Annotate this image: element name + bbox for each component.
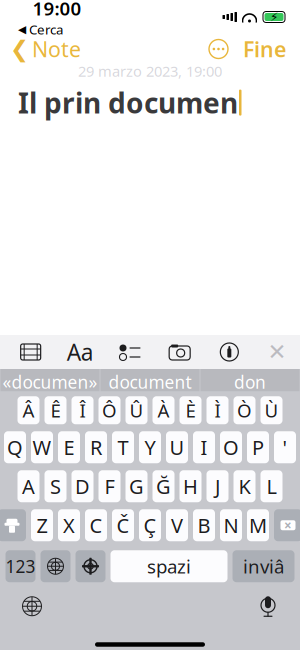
- staticText: B: [197, 512, 210, 539]
- button[interactable]: Ê: [44, 396, 66, 424]
- button[interactable]: X: [58, 509, 80, 541]
- button[interactable]: Ğ: [152, 470, 174, 502]
- button[interactable]: W: [31, 431, 53, 463]
- button[interactable]: 123: [5, 550, 35, 582]
- staticText: ⚡︎: [270, 10, 278, 24]
- button[interactable]: E: [58, 431, 80, 463]
- staticText: È: [185, 398, 195, 423]
- button[interactable]: Maiuscole: [0, 509, 26, 541]
- staticText: Note: [32, 35, 81, 63]
- staticText: C: [89, 512, 102, 539]
- staticText: A: [22, 473, 35, 500]
- staticText: Aa: [67, 337, 94, 367]
- button[interactable]: Q: [4, 431, 26, 463]
- button[interactable]: A: [17, 470, 39, 502]
- staticText: 29 marzo 2023, 19:00: [78, 61, 222, 81]
- staticText: Ç: [143, 512, 156, 539]
- staticText: X: [63, 512, 75, 539]
- staticText: ❮: [10, 36, 29, 62]
- staticText: Č: [116, 512, 129, 539]
- button[interactable]: J: [206, 470, 228, 502]
- staticText: don: [234, 370, 266, 393]
- button[interactable]: Chiudi: [260, 337, 294, 367]
- staticText: L: [266, 473, 276, 500]
- staticText: ✕: [267, 339, 286, 365]
- staticText: J: [215, 473, 220, 500]
- button[interactable]: D: [71, 470, 93, 502]
- staticText: U: [169, 434, 184, 461]
- button[interactable]: V: [166, 509, 188, 541]
- button[interactable]: Û: [125, 396, 147, 424]
- button[interactable]: À: [152, 396, 174, 424]
- staticText: inviâ: [243, 554, 284, 579]
- button[interactable]: Ô: [98, 396, 120, 424]
- button[interactable]: Cambia tastiera: [40, 550, 70, 582]
- button[interactable]: R: [85, 431, 107, 463]
- staticText: Î: [79, 398, 85, 423]
- button[interactable]: Emoji e lingue: [14, 592, 50, 620]
- button[interactable]: Y: [139, 431, 161, 463]
- button[interactable]: P: [247, 431, 269, 463]
- button[interactable]: L: [260, 470, 282, 502]
- staticText: spazi: [147, 554, 191, 579]
- button[interactable]: spazi: [110, 550, 227, 582]
- button[interactable]: F: [98, 470, 120, 502]
- button[interactable]: ❮: [0, 29, 81, 69]
- staticText: M: [249, 512, 267, 539]
- button[interactable]: Ò: [233, 396, 255, 424]
- staticText: E: [63, 434, 74, 461]
- button[interactable]: M: [247, 509, 269, 541]
- button[interactable]: Tabella: [12, 337, 50, 367]
- button[interactable]: Impostazioni tastiera: [75, 550, 105, 582]
- button[interactable]: È: [179, 396, 201, 424]
- button[interactable]: T: [112, 431, 134, 463]
- staticText: W: [32, 434, 51, 461]
- staticText: R: [90, 434, 102, 461]
- button[interactable]: G: [125, 470, 147, 502]
- button[interactable]: Ç: [139, 509, 161, 541]
- staticText: Ì: [214, 398, 220, 423]
- button[interactable]: ': [274, 431, 296, 463]
- staticText: ': [282, 434, 287, 461]
- button[interactable]: Elenco di controllo: [111, 337, 149, 367]
- staticText: Ğ: [156, 473, 171, 500]
- button[interactable]: Altre opzioni: [204, 32, 233, 65]
- button[interactable]: B: [193, 509, 215, 541]
- staticText: ×: [284, 516, 292, 534]
- staticText: S: [50, 473, 61, 500]
- staticText: P: [252, 434, 264, 461]
- staticText: Ù: [264, 398, 278, 423]
- staticText: Il prin documen: [18, 84, 238, 121]
- button[interactable]: inviâ: [232, 550, 294, 582]
- button[interactable]: K: [233, 470, 255, 502]
- button[interactable]: Markup: [210, 337, 248, 367]
- button[interactable]: H: [179, 470, 201, 502]
- button[interactable]: N: [220, 509, 242, 541]
- button[interactable]: document: [100, 369, 199, 395]
- button[interactable]: C: [85, 509, 107, 541]
- staticText: ◀: [18, 23, 26, 35]
- button[interactable]: Ù: [260, 396, 282, 424]
- staticText: 123: [5, 555, 35, 578]
- staticText: H: [183, 473, 198, 500]
- staticText: Cerca: [29, 20, 63, 38]
- button[interactable]: Z: [31, 509, 53, 541]
- button[interactable]: Fotocamera: [161, 337, 199, 367]
- button[interactable]: Ì: [206, 396, 228, 424]
- button[interactable]: Fine: [233, 29, 300, 69]
- staticText: 19:00: [32, 0, 81, 21]
- button[interactable]: O: [220, 431, 242, 463]
- button[interactable]: Dettatura: [250, 592, 286, 620]
- button[interactable]: U: [166, 431, 188, 463]
- button[interactable]: I: [193, 431, 215, 463]
- button[interactable]: don: [200, 369, 299, 395]
- button[interactable]: «documen»: [0, 369, 99, 395]
- button[interactable]: Č: [112, 509, 134, 541]
- button[interactable]: Â: [17, 396, 39, 424]
- button[interactable]: Elimina: [274, 509, 300, 541]
- button[interactable]: Formato: [61, 337, 99, 367]
- staticText: N: [223, 512, 238, 539]
- button[interactable]: S: [44, 470, 66, 502]
- button[interactable]: Î: [71, 396, 93, 424]
- staticText: K: [238, 473, 250, 500]
